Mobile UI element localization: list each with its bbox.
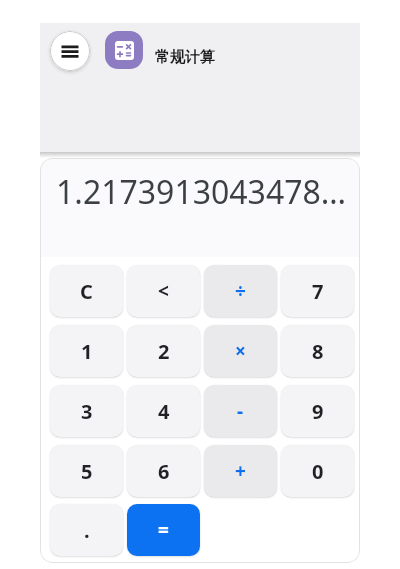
staticText: 7 xyxy=(312,278,324,305)
staticText: ÷ xyxy=(235,278,246,304)
button[interactable]: 0 xyxy=(281,445,354,497)
staticText: C xyxy=(80,278,93,305)
button[interactable]: < xyxy=(127,265,200,317)
button[interactable]: 1 xyxy=(50,325,123,377)
button[interactable]: . xyxy=(50,504,123,556)
button[interactable]: × xyxy=(204,325,277,377)
staticText: 6 xyxy=(158,458,170,485)
button[interactable]: 7 xyxy=(281,265,354,317)
button[interactable]: 8 xyxy=(281,325,354,377)
button[interactable]: 2 xyxy=(127,325,200,377)
staticText: + xyxy=(235,458,246,484)
button[interactable]: 6 xyxy=(127,445,200,497)
staticText: × xyxy=(235,338,246,364)
button[interactable]: C xyxy=(50,265,123,317)
staticText: - xyxy=(237,398,244,424)
staticText: 5 xyxy=(81,458,93,485)
staticText: 0 xyxy=(312,458,324,485)
button[interactable]: 4 xyxy=(127,385,200,437)
button[interactable] xyxy=(50,31,90,71)
button[interactable]: 3 xyxy=(50,385,123,437)
button[interactable] xyxy=(105,31,143,69)
button[interactable]: = xyxy=(127,504,200,556)
staticText: 2 xyxy=(158,338,170,365)
staticText: 常规计算 xyxy=(155,48,215,67)
staticText: 1.2173913043478… xyxy=(56,170,347,214)
staticText: < xyxy=(158,278,169,304)
button[interactable]: + xyxy=(204,445,277,497)
staticText: 3 xyxy=(81,398,93,425)
staticText: . xyxy=(84,517,90,544)
staticText: 9 xyxy=(312,398,324,425)
staticText: 8 xyxy=(312,338,324,365)
staticText: 1 xyxy=(81,338,93,365)
button[interactable]: 5 xyxy=(50,445,123,497)
staticText: 4 xyxy=(158,398,170,425)
button[interactable]: - xyxy=(204,385,277,437)
button[interactable]: ÷ xyxy=(204,265,277,317)
staticText: = xyxy=(158,517,169,543)
button[interactable]: 9 xyxy=(281,385,354,437)
